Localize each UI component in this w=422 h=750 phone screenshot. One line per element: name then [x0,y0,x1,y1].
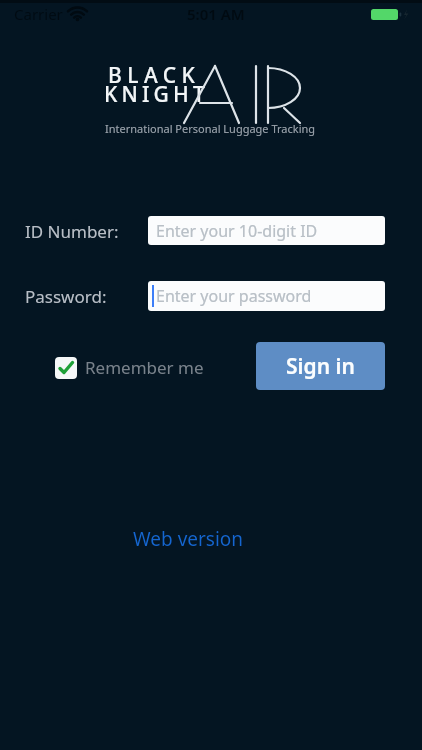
staticText: KNIGHT [104,80,209,109]
staticText: Sign in [286,352,355,381]
staticText: Password: [25,285,107,308]
staticText: Carrier [14,4,63,24]
staticText: Enter your password [156,285,312,307]
staticText: BLACK [108,61,201,90]
staticText: International Personal Luggage Tracking [105,121,316,136]
staticText: Web version [133,526,244,552]
button[interactable]: Enter your 10-digit ID [148,216,385,245]
staticText: Remember me [85,356,204,379]
staticText: Enter your 10-digit ID [156,220,318,242]
button[interactable]: Enter your password [148,281,385,311]
staticText: ID Number: [25,220,119,243]
button[interactable]: Web version [133,526,244,552]
button[interactable]: Remember me [55,356,204,379]
staticText: 5:01 AM [187,4,245,24]
button[interactable]: Sign in [256,342,385,390]
